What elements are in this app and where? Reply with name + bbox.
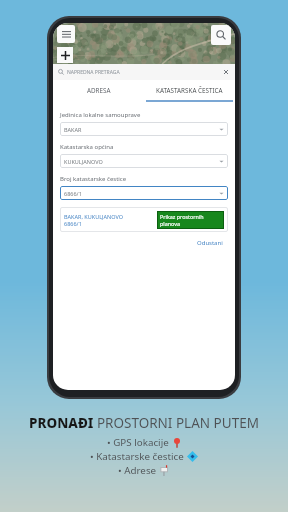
staticText: • Adrese: [118, 464, 157, 477]
button[interactable]: ADRESA: [53, 80, 144, 100]
staticText: BAKAR, KUKULJANOVO: [64, 213, 124, 220]
button[interactable]: Zoom in: [57, 47, 73, 63]
staticText: 6866/1: [64, 220, 82, 227]
staticText: Broj katastarske čestice: [60, 175, 127, 183]
button[interactable]: KUKULJANOVO: [60, 154, 228, 168]
staticText: ADRESA: [87, 86, 111, 95]
button[interactable]: Prikaz prostornih: [157, 211, 224, 229]
staticText: 6866/1: [64, 190, 82, 197]
staticText: KATASTARSKA ČESTICA: [156, 86, 223, 95]
staticText: NAPREDNA PRETRAGA: [67, 69, 120, 76]
staticText: PRONAĐI PROSTORNI PLAN PUTEM: [29, 414, 259, 432]
staticText: Katastarska općina: [60, 143, 114, 151]
staticText: • GPS lokacije: [107, 436, 169, 449]
staticText: BAKAR: [64, 126, 82, 133]
button[interactable]: Search map: [211, 25, 231, 45]
button[interactable]: NAPREDNA PRETRAGA: [53, 64, 235, 80]
button[interactable]: KATASTARSKA ČESTICA: [144, 80, 235, 100]
button[interactable]: Odustani: [192, 237, 228, 249]
button[interactable]: Menu: [57, 25, 75, 43]
staticText: • Katastarske čestice: [90, 450, 184, 463]
staticText: Odustani: [197, 239, 223, 247]
staticText: planova: [160, 220, 180, 227]
button[interactable]: 6866/1: [60, 186, 228, 200]
button[interactable]: Close search: [222, 68, 230, 76]
staticText: KUKULJANOVO: [64, 158, 103, 165]
staticText: Jedinica lokalne samouprave: [60, 111, 141, 119]
staticText: Prikaz prostornih: [160, 213, 204, 220]
button[interactable]: BAKAR, KUKULJANOVO: [64, 213, 154, 227]
button[interactable]: BAKAR: [60, 122, 228, 136]
